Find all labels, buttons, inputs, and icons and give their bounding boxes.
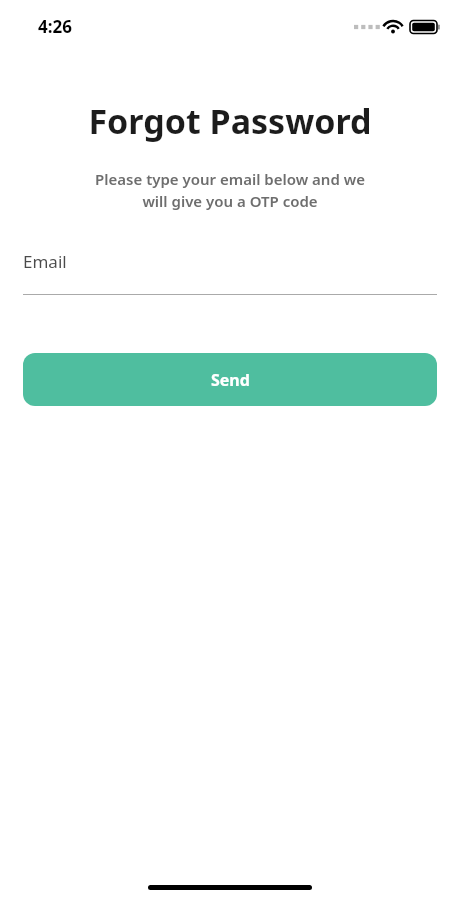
staticText: Please type your email below and we will… — [95, 169, 365, 212]
button[interactable]: Send — [23, 353, 437, 406]
staticText: Forgot Password — [88, 98, 372, 144]
button[interactable]: Email — [23, 250, 437, 295]
staticText: 4:26 — [38, 15, 72, 38]
staticText: Send — [211, 369, 250, 391]
staticText: Email — [23, 250, 67, 273]
